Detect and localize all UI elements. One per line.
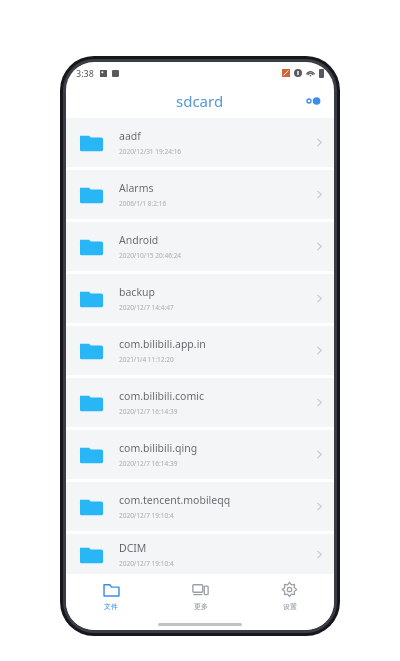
staticText: com.bilibili.app.in xyxy=(119,337,206,351)
staticText: Alarms xyxy=(119,181,154,195)
button[interactable]: Alarms xyxy=(66,170,334,219)
button[interactable]: 更多 xyxy=(156,574,245,618)
staticText: com.bilibili.qing xyxy=(119,441,198,455)
staticText: 2006/1/1 8:2:16 xyxy=(119,199,167,208)
button[interactable]: com.tencent.mobileqq xyxy=(66,482,334,531)
staticText: 2020/10/15 20:46:24 xyxy=(119,251,182,260)
staticText: 设置 xyxy=(283,602,297,611)
staticText: 更多 xyxy=(194,602,208,611)
button[interactable]: com.bilibili.qing xyxy=(66,430,334,479)
button[interactable]: aadf xyxy=(66,118,334,167)
button[interactable]: 文件 xyxy=(66,574,156,618)
staticText: com.tencent.mobileqq xyxy=(119,493,231,507)
staticText: sdcard xyxy=(176,91,224,111)
staticText: 2020/12/7 14:4:47 xyxy=(119,303,174,312)
staticText: 2020/12/7 16:14:39 xyxy=(119,459,178,468)
staticText: aadf xyxy=(119,129,141,143)
staticText: 2020/12/7 19:10:4 xyxy=(119,511,174,520)
button[interactable]: Android xyxy=(66,222,334,271)
staticText: Android xyxy=(119,233,159,247)
staticText: 文件 xyxy=(104,602,118,611)
button[interactable]: Toggle view xyxy=(300,88,326,114)
staticText: 2020/12/7 16:14:39 xyxy=(119,407,178,416)
staticText: 2020/12/31 19:24:16 xyxy=(119,147,182,156)
button[interactable]: 设置 xyxy=(245,574,334,618)
button[interactable]: com.bilibili.comic xyxy=(66,378,334,427)
staticText: com.bilibili.comic xyxy=(119,389,204,403)
staticText: 3:38 xyxy=(76,67,94,79)
staticText: 2020/12/7 19:10:4 xyxy=(119,559,174,568)
button[interactable]: backup xyxy=(66,274,334,323)
button[interactable]: DCIM xyxy=(66,534,334,574)
staticText: backup xyxy=(119,285,155,299)
staticText: 2021/1/4 11:12:20 xyxy=(119,355,174,364)
staticText: DCIM xyxy=(119,541,147,555)
button[interactable]: com.bilibili.app.in xyxy=(66,326,334,375)
